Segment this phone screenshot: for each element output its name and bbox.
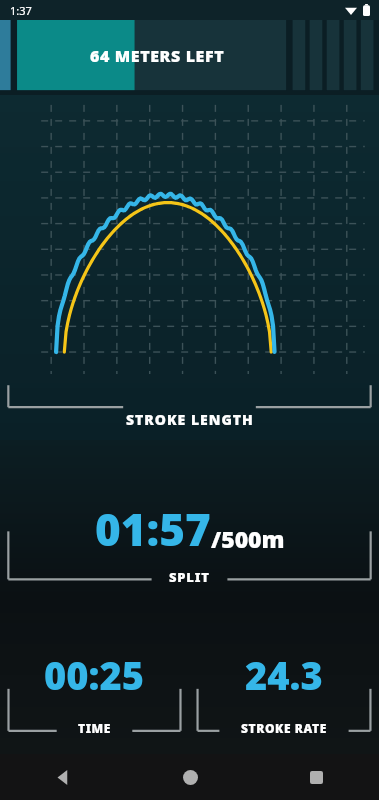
staticText: 24.3 <box>245 649 323 701</box>
button[interactable]: 00:25 <box>0 649 189 737</box>
staticText: 64 METERS LEFT <box>90 45 225 67</box>
staticText: STROKE RATE <box>241 720 327 736</box>
button[interactable]: 64 METERS LEFT <box>0 20 379 95</box>
button[interactable]: 01:57 <box>0 497 379 587</box>
staticText: 1:37 <box>10 3 32 18</box>
staticText: SPLIT <box>169 568 210 586</box>
button[interactable]: Home <box>127 754 253 800</box>
staticText: STROKE LENGTH <box>126 410 254 429</box>
button[interactable]: Back <box>0 754 127 800</box>
staticText: 00:25 <box>44 649 145 701</box>
staticText: TIME <box>78 720 111 736</box>
button[interactable]: Recent apps <box>253 754 379 800</box>
button[interactable]: 24.3 <box>189 649 379 737</box>
staticText: /500m <box>211 523 285 554</box>
staticText: 01:57 <box>95 499 211 559</box>
